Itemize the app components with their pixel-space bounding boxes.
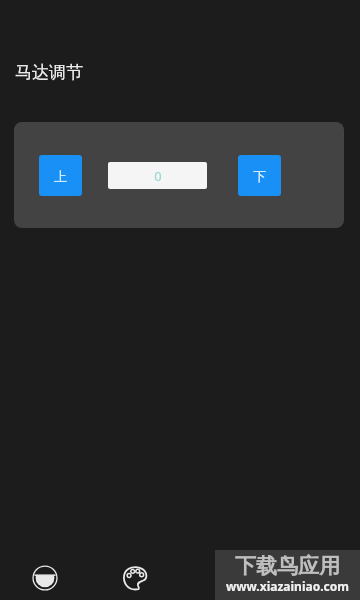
staticText: 马达调节 (15, 62, 83, 83)
button[interactable]: Bowl (23, 556, 67, 600)
staticText: 下载鸟应用 (235, 553, 340, 579)
staticText: 上 (54, 168, 67, 184)
staticText: 下 (253, 168, 266, 184)
button[interactable]: 0 (108, 162, 207, 189)
button[interactable]: Palette (113, 556, 157, 600)
button[interactable]: 上 (39, 155, 82, 196)
staticText: 0 (154, 167, 162, 185)
button[interactable]: 下 (238, 155, 281, 196)
staticText: www.xiazainiao.com (226, 578, 349, 594)
